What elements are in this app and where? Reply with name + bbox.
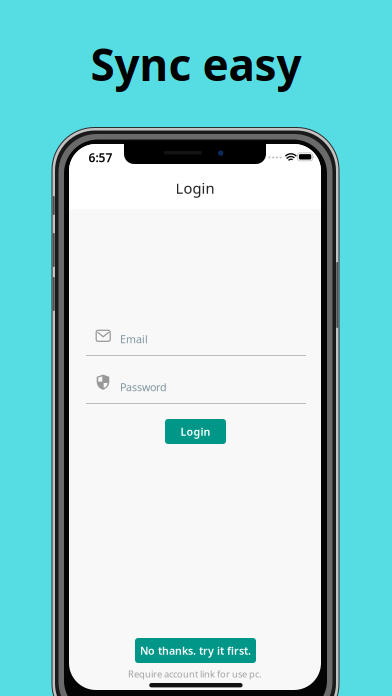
button[interactable]: Password (86, 370, 306, 404)
staticText: Sync easy (90, 35, 301, 93)
button[interactable]: No thanks. try it first. (135, 638, 256, 663)
staticText: Login (180, 424, 210, 439)
staticText: Login (175, 178, 214, 198)
staticText: Password (120, 380, 167, 394)
staticText: No thanks. try it first. (140, 643, 251, 658)
button[interactable]: Email (86, 322, 306, 356)
staticText: Require account link for use pc. (128, 668, 262, 680)
staticText: Email (120, 332, 148, 346)
button[interactable]: Login (69, 175, 321, 201)
button[interactable]: Login (165, 419, 226, 444)
staticText: 6:57 (88, 149, 112, 165)
